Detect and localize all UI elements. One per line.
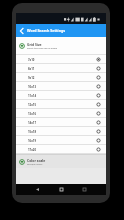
staticText: 13x16	[28, 112, 37, 116]
button[interactable]: Back	[31, 184, 43, 195]
staticText: 9x12	[28, 76, 35, 80]
staticText: 10x13	[28, 85, 37, 89]
button[interactable]: Recent apps	[78, 184, 90, 195]
staticText: 8x11	[28, 67, 35, 71]
button[interactable]: 16x19	[16, 136, 106, 145]
staticText: Word Search Settings	[27, 28, 66, 33]
staticText: Disable Colors	[27, 163, 43, 166]
button[interactable]: 10x13	[16, 82, 106, 91]
button[interactable]: 13x16	[16, 109, 106, 118]
staticText: 12x15	[28, 103, 37, 107]
button[interactable]: 9x12	[16, 73, 106, 82]
staticText: 7x10	[28, 58, 35, 62]
button[interactable]: Navigate up	[16, 24, 27, 37]
button[interactable]: 17x20	[16, 145, 106, 154]
staticText: 16x19	[28, 139, 37, 143]
button[interactable]: 7x10	[16, 55, 106, 64]
staticText: Select the Grid size of game	[27, 47, 58, 50]
staticText: Grid Size	[27, 42, 42, 47]
staticText: 17x20	[28, 148, 37, 152]
staticText: 14x17	[28, 121, 37, 125]
staticText: Color scale	[27, 158, 46, 163]
staticText: 11x14	[28, 94, 37, 98]
button[interactable]: 11x14	[16, 91, 106, 100]
button[interactable]: 14x17	[16, 118, 106, 127]
staticText: 15x18	[28, 130, 37, 134]
button[interactable]: 15x18	[16, 127, 106, 136]
button[interactable]: 12x15	[16, 100, 106, 109]
button[interactable]: 8x11	[16, 64, 106, 73]
button[interactable]: Home	[55, 184, 67, 195]
